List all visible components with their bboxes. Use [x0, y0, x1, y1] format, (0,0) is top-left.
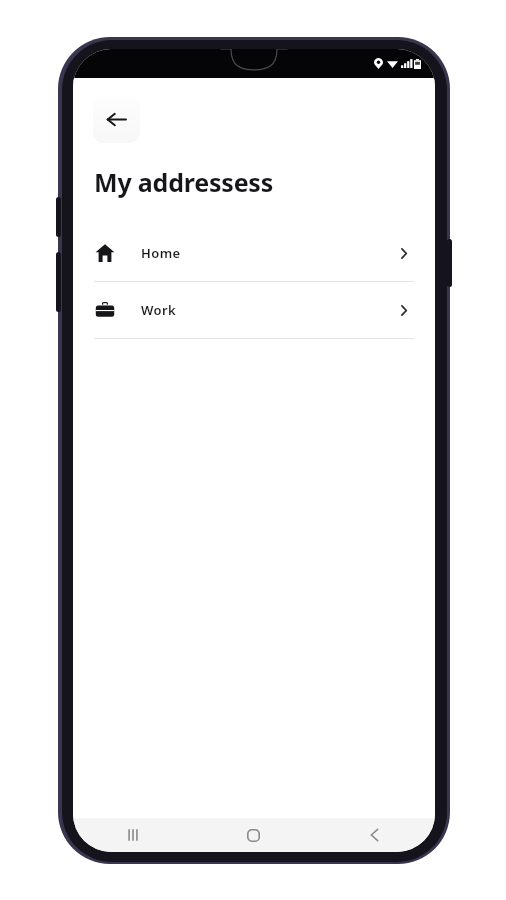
button[interactable]: Work	[73, 282, 435, 338]
staticText: Home	[141, 244, 181, 262]
button[interactable]: Home	[193, 818, 314, 852]
staticText: Work	[141, 301, 177, 319]
button[interactable]: Recent apps	[73, 818, 193, 852]
button[interactable]: Home	[73, 225, 435, 281]
button[interactable]: Back	[93, 96, 140, 143]
staticText: My addressess	[94, 165, 274, 199]
button[interactable]: Back	[314, 818, 435, 852]
